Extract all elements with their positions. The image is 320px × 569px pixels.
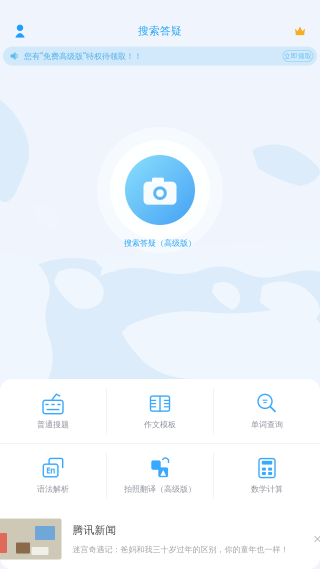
staticText: 普通搜题 — [37, 420, 69, 429]
staticText: 搜索答疑 — [138, 24, 182, 37]
staticText: 立即领取 — [284, 52, 312, 60]
button[interactable]: Search by photo — [95, 125, 225, 255]
staticText: 搜索答疑（高级版） — [124, 238, 196, 248]
staticText: 作文模板 — [144, 420, 176, 429]
staticText: 您有“免费高级版”特权待领取！！ — [24, 51, 142, 61]
button[interactable]: 作文模板 — [107, 379, 213, 443]
staticText: 单词查询 — [251, 420, 283, 429]
staticText: 数学计算 — [251, 484, 283, 494]
staticText: 语法解析 — [37, 484, 69, 494]
button[interactable]: 普通搜题 — [0, 379, 106, 443]
button[interactable]: 立即领取 — [282, 46, 314, 65]
button[interactable]: 数学计算 — [214, 444, 320, 507]
button[interactable]: En — [0, 444, 106, 507]
staticText: 拍照翻译（高级版） — [124, 484, 196, 494]
button[interactable]: Membership — [282, 8, 318, 54]
button[interactable]: 拍照翻译（高级版） — [107, 444, 213, 507]
button[interactable]: Dismiss ad — [310, 532, 320, 546]
button[interactable]: Profile — [2, 8, 38, 54]
staticText: 腾讯新闻 — [72, 523, 116, 537]
staticText: 迷宫奇遇记：爸妈和我三十岁过年的区别，你的童年也一样！ — [72, 545, 288, 554]
button[interactable]: 单词查询 — [214, 379, 320, 443]
button[interactable]: 腾讯新闻 — [0, 509, 320, 569]
staticText: En — [46, 465, 55, 476]
